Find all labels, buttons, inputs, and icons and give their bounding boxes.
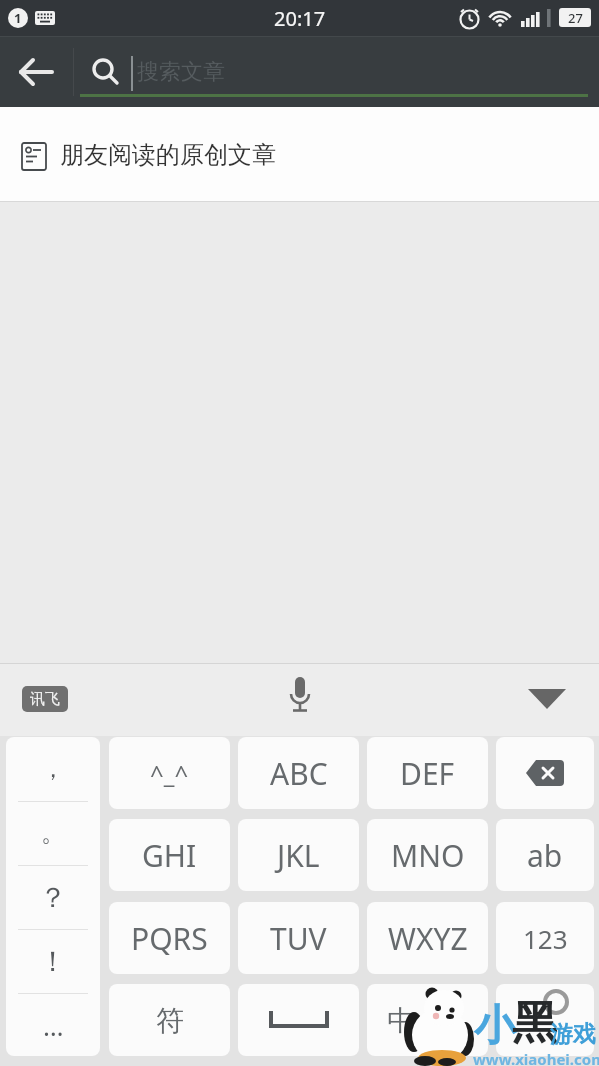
button[interactable]: TUV — [238, 902, 359, 974]
staticText: TUV — [270, 918, 327, 959]
button[interactable] — [515, 675, 579, 723]
button[interactable]: ^_^ — [109, 737, 230, 809]
staticText: DEF — [400, 753, 455, 794]
staticText: GHI — [142, 835, 197, 876]
button[interactable]: GHI — [109, 819, 230, 891]
button[interactable] — [496, 737, 594, 809]
staticText: 讯飞 — [30, 690, 60, 709]
staticText: ABC — [270, 753, 328, 794]
button[interactable]: WXYZ — [367, 902, 488, 974]
button[interactable]: 123 — [496, 902, 594, 974]
staticText: ！ — [39, 944, 67, 979]
staticText: 符 — [156, 1003, 184, 1038]
staticText: JKL — [277, 835, 320, 876]
staticText: PQRS — [131, 918, 208, 959]
button[interactable]: 朋友阅读的原创文章 — [0, 107, 599, 202]
button[interactable] — [238, 984, 359, 1056]
button[interactable]: 符 — [109, 984, 230, 1056]
button[interactable] — [10, 46, 62, 98]
staticText: ab — [527, 835, 563, 876]
button[interactable]: MNO — [367, 819, 488, 891]
staticText: 20:17 — [274, 5, 326, 32]
button[interactable]: 中 — [367, 984, 488, 1056]
staticText: www.xiaohei.com — [473, 1049, 599, 1066]
button[interactable] — [278, 671, 322, 727]
staticText: 游戏 — [550, 1020, 596, 1049]
button[interactable] — [496, 984, 594, 1056]
staticText: 黑 — [512, 995, 557, 1052]
staticText: ， — [41, 754, 65, 784]
button[interactable]: PQRS — [109, 902, 230, 974]
staticText: 。 — [41, 818, 65, 848]
staticText: 1 — [14, 9, 22, 27]
staticText: 朋友阅读的原创文章 — [60, 140, 276, 170]
button[interactable]: ab — [496, 819, 594, 891]
staticText: WXYZ — [388, 918, 468, 959]
button[interactable]: 讯飞 — [22, 686, 68, 712]
staticText: 小 — [474, 1000, 516, 1053]
staticText: … — [43, 1008, 64, 1043]
staticText: 中 — [387, 1003, 415, 1038]
button[interactable]: JKL — [238, 819, 359, 891]
staticText: 123 — [523, 921, 568, 956]
button[interactable]: DEF — [367, 737, 488, 809]
staticText: MNO — [391, 835, 465, 876]
staticText: ^_^ — [150, 757, 189, 790]
button[interactable]: ABC — [238, 737, 359, 809]
button[interactable]: ， — [6, 737, 100, 1056]
staticText: 27 — [568, 9, 583, 27]
staticText: ？ — [39, 880, 67, 915]
staticText: 搜索文章 — [137, 58, 225, 86]
